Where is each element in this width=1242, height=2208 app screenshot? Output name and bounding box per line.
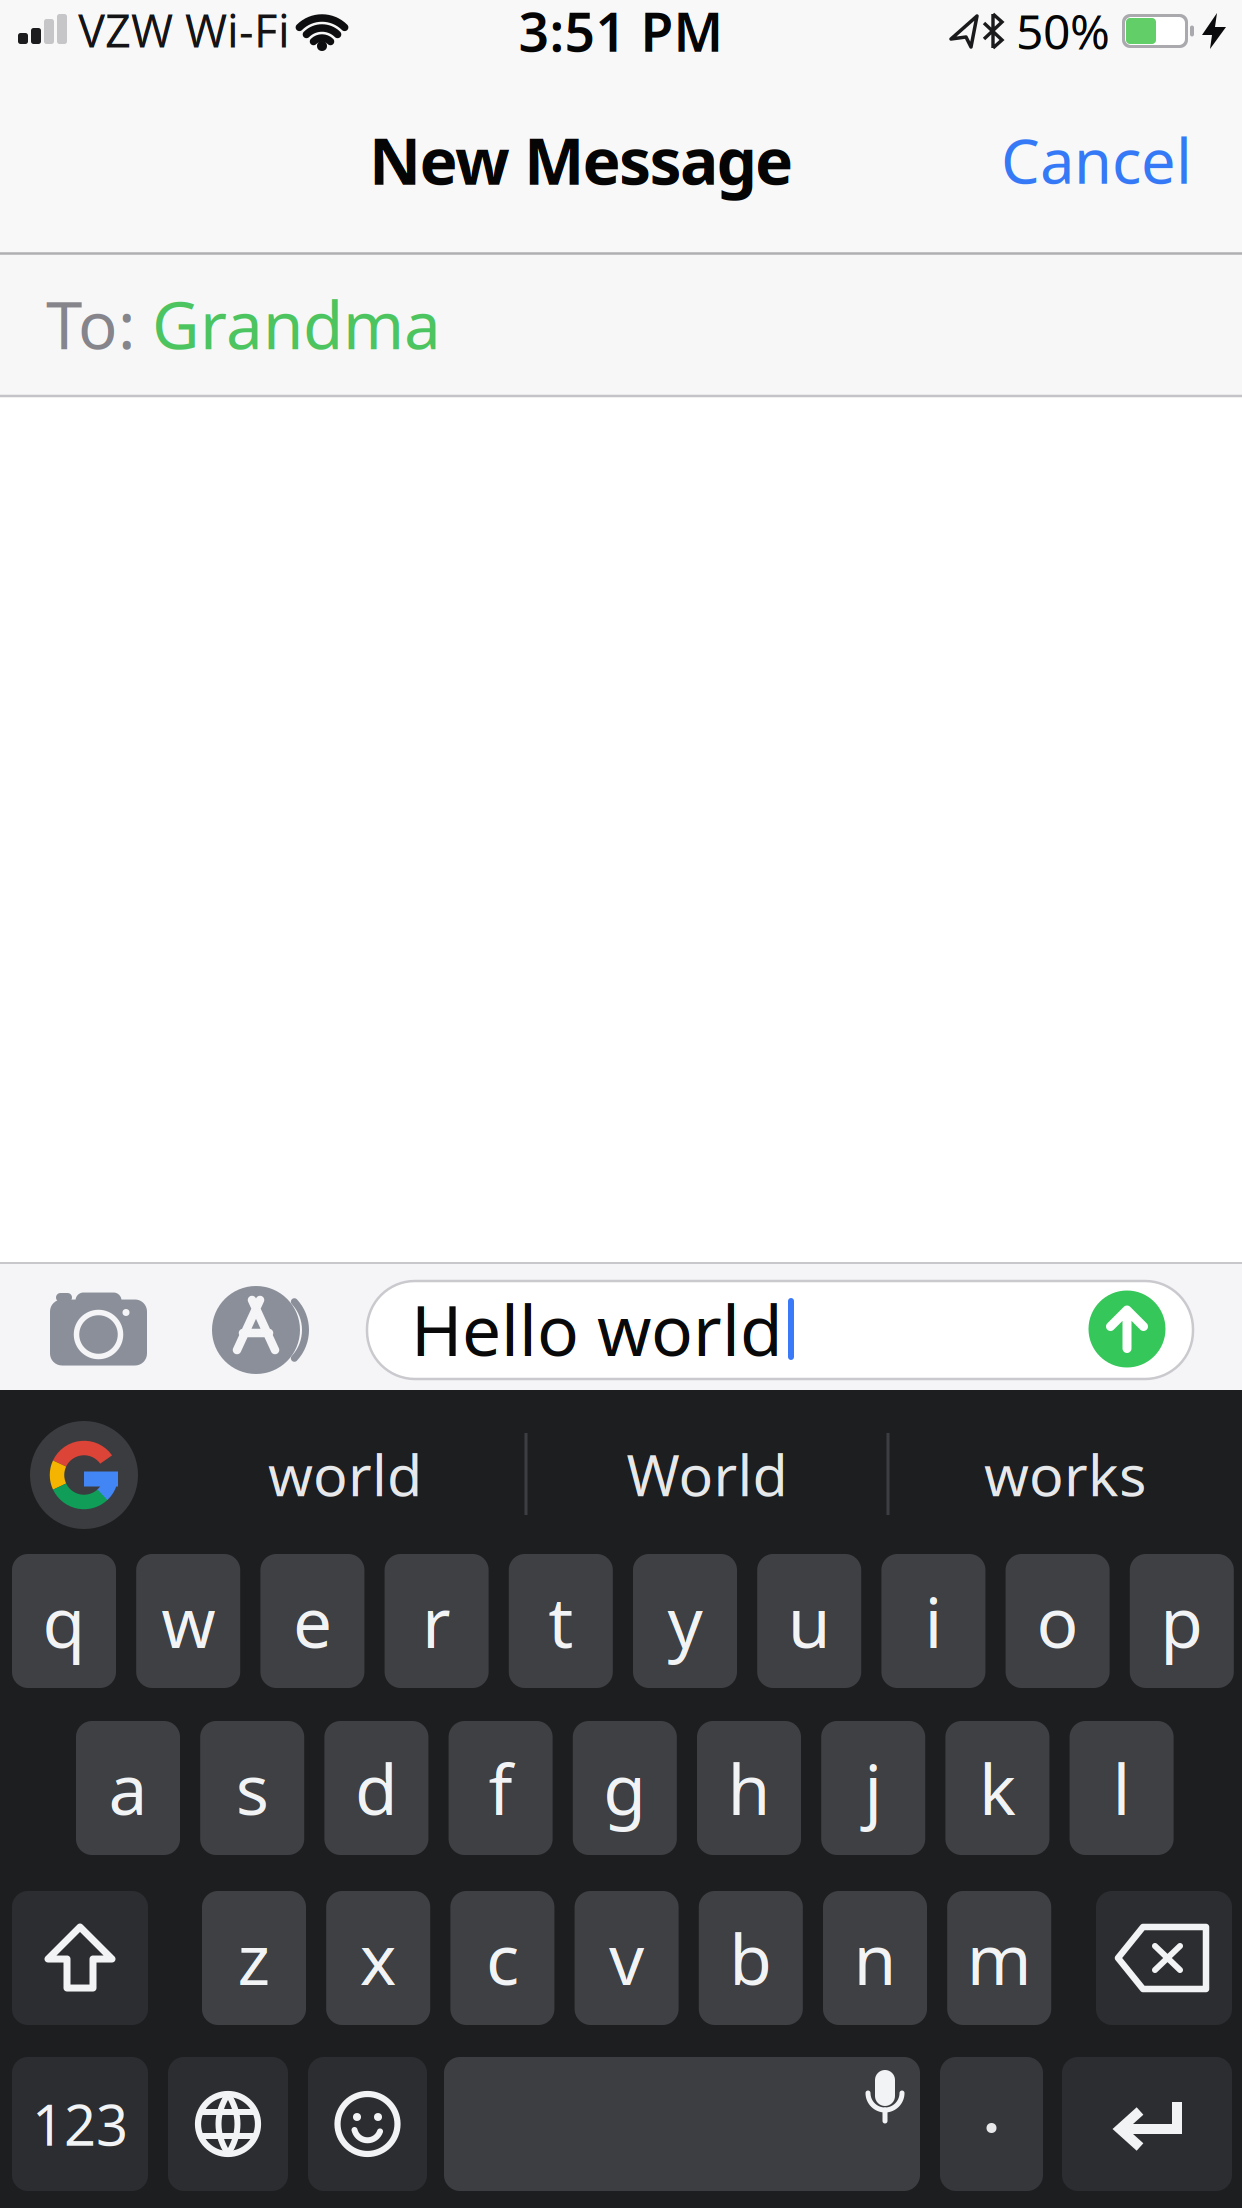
staticText: q bbox=[42, 1575, 85, 1667]
staticText: Hello world bbox=[411, 1283, 783, 1375]
staticText: y bbox=[667, 1575, 702, 1667]
button[interactable]: u bbox=[757, 1554, 861, 1688]
staticText: To: bbox=[46, 281, 136, 367]
button[interactable]: b bbox=[699, 1891, 803, 2025]
staticText: g bbox=[603, 1742, 646, 1834]
button[interactable]: j bbox=[821, 1721, 925, 1855]
staticText: v bbox=[609, 1912, 644, 2004]
button[interactable] bbox=[367, 1281, 1193, 1379]
button[interactable]: i bbox=[881, 1554, 985, 1688]
staticText: Cancel bbox=[1001, 119, 1192, 201]
staticText: r bbox=[422, 1575, 451, 1667]
button[interactable] bbox=[1088, 1290, 1165, 1367]
button[interactable]: m bbox=[947, 1891, 1051, 2025]
staticText: l bbox=[1113, 1742, 1131, 1834]
button[interactable]: x bbox=[326, 1891, 430, 2025]
button[interactable]: d bbox=[324, 1721, 428, 1855]
staticText: x bbox=[360, 1912, 397, 2004]
staticText: h bbox=[727, 1742, 770, 1834]
staticText: z bbox=[237, 1912, 270, 2004]
staticText: 123 bbox=[32, 2087, 128, 2161]
staticText: k bbox=[979, 1742, 1016, 1834]
button[interactable]: z bbox=[202, 1891, 306, 2025]
button[interactable]: k bbox=[945, 1721, 1049, 1855]
button[interactable] bbox=[308, 2057, 427, 2191]
button[interactable] bbox=[12, 1891, 148, 2025]
staticText: f bbox=[489, 1742, 513, 1834]
staticText: t bbox=[548, 1575, 573, 1667]
staticText: works bbox=[984, 1436, 1146, 1512]
button[interactable]: s bbox=[200, 1721, 304, 1855]
staticText: 50% bbox=[1016, 0, 1110, 63]
staticText: VZW Wi-Fi bbox=[78, 0, 290, 60]
button[interactable]: r bbox=[385, 1554, 489, 1688]
button[interactable]: c bbox=[450, 1891, 554, 2025]
staticText: m bbox=[967, 1912, 1032, 2004]
button[interactable]: o bbox=[1006, 1554, 1110, 1688]
button[interactable] bbox=[1062, 2057, 1232, 2191]
staticText: u bbox=[788, 1575, 831, 1667]
staticText: i bbox=[924, 1575, 942, 1667]
staticText: p bbox=[1160, 1575, 1203, 1667]
button[interactable]: works bbox=[900, 1419, 1230, 1529]
button[interactable] bbox=[168, 2057, 288, 2191]
button[interactable] bbox=[50, 1290, 147, 1365]
button[interactable]: a bbox=[76, 1721, 180, 1855]
button[interactable]: y bbox=[633, 1554, 737, 1688]
staticText: s bbox=[236, 1742, 269, 1834]
button[interactable]: t bbox=[509, 1554, 613, 1688]
staticText: 3:51 PM bbox=[518, 0, 723, 66]
button[interactable]: p bbox=[1130, 1554, 1234, 1688]
staticText: b bbox=[729, 1912, 772, 2004]
staticText: world bbox=[268, 1436, 422, 1512]
staticText: c bbox=[486, 1912, 519, 2004]
button[interactable]: g bbox=[573, 1721, 677, 1855]
button[interactable]: World bbox=[542, 1419, 872, 1529]
button[interactable]: v bbox=[575, 1891, 679, 2025]
staticText: e bbox=[293, 1575, 332, 1667]
staticText: j bbox=[864, 1742, 882, 1834]
button[interactable]: n bbox=[823, 1891, 927, 2025]
button[interactable]: world bbox=[175, 1419, 515, 1529]
staticText: w bbox=[161, 1575, 215, 1667]
button[interactable]: l bbox=[1070, 1721, 1174, 1855]
button[interactable]: f bbox=[449, 1721, 553, 1855]
button[interactable] bbox=[444, 2057, 920, 2191]
button[interactable]: w bbox=[136, 1554, 240, 1688]
staticText: New Message bbox=[369, 117, 793, 202]
button[interactable]: q bbox=[12, 1554, 116, 1688]
button[interactable] bbox=[940, 2057, 1043, 2191]
button[interactable]: Cancel bbox=[912, 110, 1192, 210]
staticText: World bbox=[626, 1436, 787, 1512]
staticText: o bbox=[1037, 1575, 1079, 1667]
button[interactable]: To: bbox=[46, 254, 1196, 394]
button[interactable]: h bbox=[697, 1721, 801, 1855]
staticText: n bbox=[853, 1912, 896, 2004]
button[interactable] bbox=[212, 1286, 316, 1374]
staticText: a bbox=[108, 1742, 147, 1834]
staticText: d bbox=[355, 1742, 398, 1834]
button[interactable] bbox=[1096, 1891, 1232, 2025]
button[interactable] bbox=[32, 1423, 136, 1527]
button[interactable]: e bbox=[260, 1554, 364, 1688]
staticText: Grandma bbox=[152, 281, 441, 367]
button[interactable]: 123 bbox=[12, 2057, 148, 2191]
